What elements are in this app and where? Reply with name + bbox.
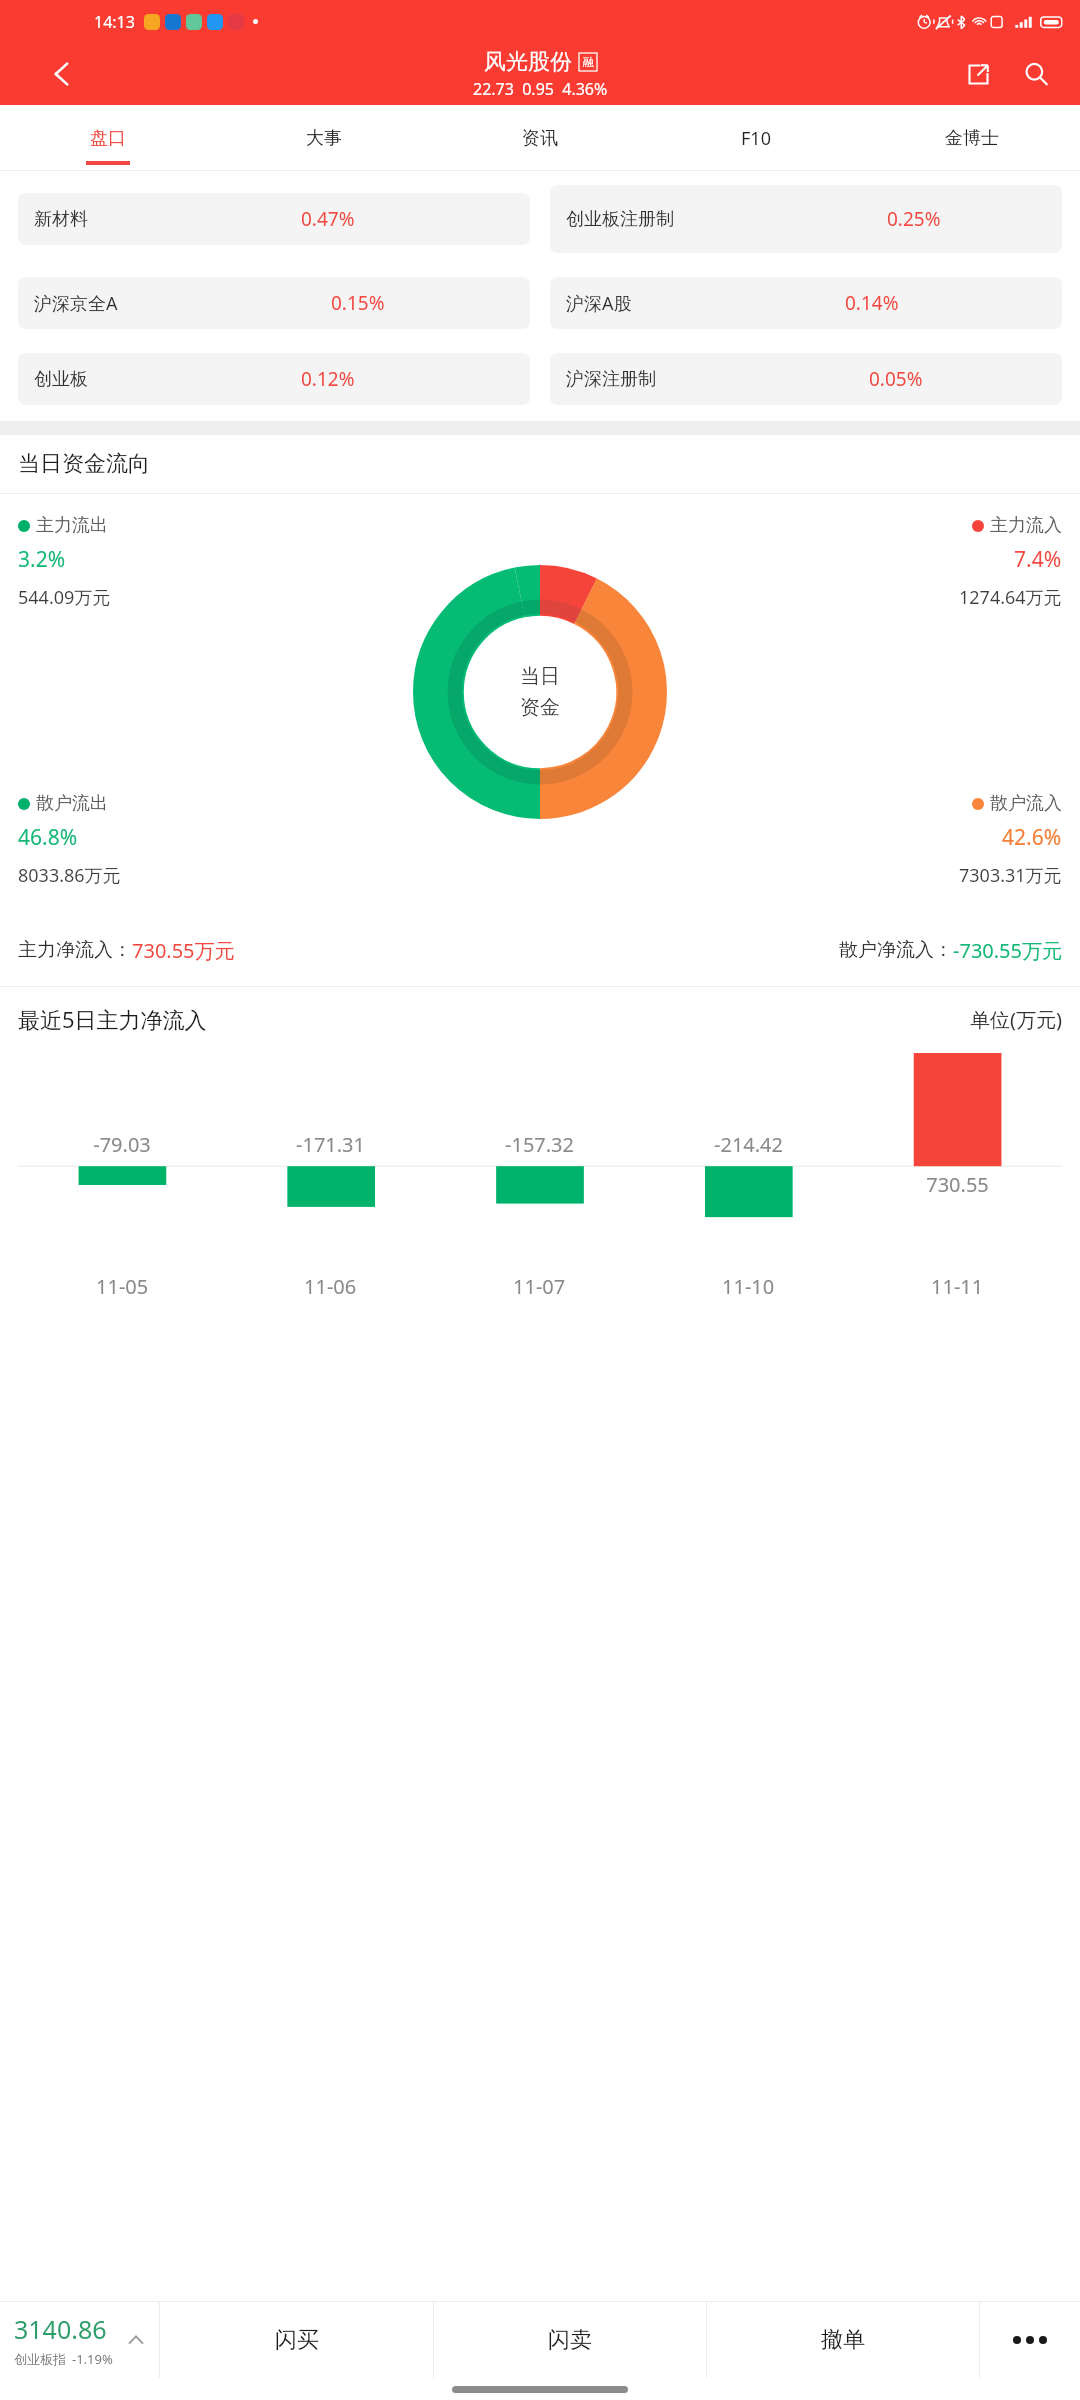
- staticText: 散户流出: [36, 792, 108, 815]
- button[interactable]: More options: [980, 2302, 1080, 2378]
- staticText: 0.12%: [301, 366, 355, 392]
- staticText: 7303.31万元: [959, 863, 1062, 888]
- staticText: 金博士: [945, 127, 999, 150]
- button[interactable]: 创业板: [18, 353, 530, 405]
- staticText: 散户净流入：: [839, 938, 953, 962]
- button[interactable]: 资讯: [432, 105, 648, 171]
- staticText: 11-11: [931, 1273, 984, 1300]
- button[interactable]: Back: [36, 48, 88, 100]
- button[interactable]: 沪深A股: [550, 277, 1062, 329]
- staticText: 盘口: [90, 127, 126, 150]
- staticText: 闪买: [275, 2326, 319, 2354]
- staticText: 730.55万元: [132, 937, 235, 964]
- button[interactable]: Search: [1010, 48, 1062, 100]
- staticText: 11-07: [513, 1273, 566, 1300]
- staticText: 当日: [520, 664, 560, 689]
- staticText: 0.14%: [845, 290, 899, 316]
- staticText: 主力流出: [36, 514, 108, 537]
- staticText: -1.19%: [72, 2350, 113, 2368]
- button[interactable]: 创业板注册制: [550, 185, 1062, 253]
- button[interactable]: Expand: [113, 2317, 159, 2363]
- staticText: 沪深京全A: [34, 291, 118, 316]
- button[interactable]: 盘口: [0, 105, 216, 171]
- staticText: 3140.86: [14, 2312, 107, 2346]
- staticText: 11-10: [722, 1273, 775, 1300]
- staticText: 沪深注册制: [566, 368, 656, 391]
- staticText: 创业板注册制: [566, 208, 674, 231]
- staticText: 最近5日主力净流入: [18, 1004, 207, 1034]
- staticText: 创业板: [34, 368, 88, 391]
- staticText: 3.2%: [18, 545, 66, 574]
- staticText: 14:13: [94, 11, 135, 33]
- staticText: 46.8%: [18, 823, 78, 852]
- button[interactable]: 金博士: [864, 105, 1080, 171]
- button[interactable]: Share: [952, 48, 1004, 100]
- staticText: 资讯: [522, 127, 558, 150]
- staticText: -214.42: [714, 1131, 783, 1158]
- staticText: 撤单: [821, 2326, 865, 2354]
- staticText: 闪卖: [548, 2326, 592, 2354]
- staticText: 0.15%: [331, 290, 385, 316]
- staticText: 7.4%: [1014, 545, 1062, 574]
- staticText: 11-05: [96, 1273, 149, 1300]
- staticText: 1274.64万元: [959, 585, 1062, 610]
- staticText: 沪深A股: [566, 291, 632, 316]
- button[interactable]: 新材料: [18, 193, 530, 245]
- staticText: 22.73 0.95 4.36%: [473, 78, 608, 100]
- staticText: 主力流入: [990, 514, 1062, 537]
- staticText: 主力净流入：: [18, 938, 132, 962]
- button[interactable]: 沪深注册制: [550, 353, 1062, 405]
- staticText: -157.32: [505, 1131, 574, 1158]
- button[interactable]: 沪深京全A: [18, 277, 530, 329]
- button[interactable]: 撤单: [707, 2302, 979, 2378]
- staticText: 0.47%: [301, 206, 355, 232]
- staticText: 创业板指: [14, 2351, 66, 2367]
- staticText: 融: [583, 55, 594, 69]
- staticText: 当日资金流向: [18, 450, 150, 478]
- staticText: 新材料: [34, 208, 88, 231]
- button[interactable]: 大事: [216, 105, 432, 171]
- staticText: 0.25%: [887, 206, 941, 232]
- button[interactable]: 3140.86: [14, 2312, 113, 2368]
- staticText: 8033.86万元: [18, 863, 121, 888]
- staticText: 大事: [306, 127, 342, 150]
- staticText: 单位(万元): [970, 1006, 1062, 1033]
- staticText: 42.6%: [1002, 823, 1062, 852]
- staticText: 0.05%: [869, 366, 923, 392]
- staticText: 11-06: [304, 1273, 357, 1300]
- staticText: -730.55万元: [953, 937, 1062, 964]
- staticText: 风光股份: [484, 48, 572, 76]
- staticText: -79.03: [93, 1131, 151, 1158]
- button[interactable]: 闪买: [160, 2302, 433, 2378]
- button[interactable]: 闪卖: [434, 2302, 706, 2378]
- staticText: 资金: [520, 695, 560, 720]
- staticText: 散户流入: [990, 792, 1062, 815]
- button[interactable]: F10: [648, 105, 864, 171]
- staticText: 730.55: [926, 1171, 989, 1198]
- staticText: -171.31: [296, 1131, 365, 1158]
- staticText: F10: [741, 126, 771, 151]
- staticText: 544.09万元: [18, 585, 111, 610]
